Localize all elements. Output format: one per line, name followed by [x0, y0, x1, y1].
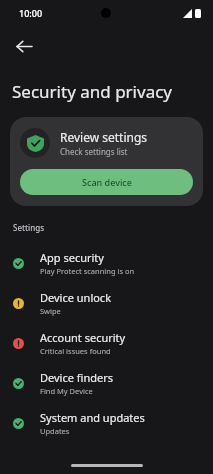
- staticText: Find My Device: [40, 386, 93, 396]
- staticText: Updates: [40, 426, 70, 436]
- staticText: Review settings: [60, 129, 148, 145]
- button[interactable]: Device unlock: [0, 283, 213, 323]
- staticText: Scan device: [82, 176, 132, 188]
- staticText: Settings: [13, 222, 45, 233]
- button[interactable]: Review settings: [10, 117, 203, 206]
- staticText: App security: [40, 250, 104, 265]
- staticText: Security and privacy: [12, 80, 173, 103]
- button[interactable]: System and updates: [0, 403, 213, 443]
- staticText: Play Protect scanning is on: [40, 266, 135, 276]
- staticText: Critical issues found: [40, 346, 111, 356]
- staticText: Device finders: [40, 370, 113, 385]
- button[interactable]: Device finders: [0, 363, 213, 403]
- button[interactable]: App security: [0, 243, 213, 283]
- staticText: Device unlock: [40, 290, 112, 305]
- button[interactable]: Scan device: [20, 169, 193, 195]
- button[interactable]: Account security: [0, 323, 213, 363]
- staticText: Check settings list: [60, 146, 128, 157]
- staticText: Swipe: [40, 306, 61, 316]
- staticText: System and updates: [40, 410, 145, 425]
- staticText: Account security: [40, 330, 126, 345]
- button[interactable]: Back: [6, 28, 42, 64]
- staticText: 10:00: [19, 7, 43, 19]
